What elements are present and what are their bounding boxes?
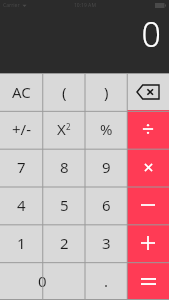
button[interactable]: % <box>85 110 127 148</box>
staticText: 0 <box>38 271 47 291</box>
button[interactable]: 0 <box>0 262 85 300</box>
staticText: ( <box>62 82 67 102</box>
button[interactable]: Divide <box>127 110 169 148</box>
button[interactable]: X <box>43 110 85 148</box>
button[interactable]: 6 <box>85 186 127 224</box>
staticText: 4 <box>17 195 26 215</box>
button[interactable]: 1 <box>0 224 43 262</box>
button[interactable]: Plus <box>127 224 169 262</box>
button[interactable]: . <box>85 262 127 300</box>
staticText: . <box>104 271 109 291</box>
button[interactable]: 8 <box>43 148 85 186</box>
button[interactable]: ( <box>43 73 85 110</box>
staticText: 5 <box>60 195 69 215</box>
button[interactable]: 3 <box>85 224 127 262</box>
button[interactable]: ) <box>85 73 127 110</box>
staticText: AC <box>12 82 31 102</box>
button[interactable]: AC <box>0 73 43 110</box>
button[interactable]: 5 <box>43 186 85 224</box>
staticText: 3 <box>102 233 111 253</box>
staticText: 6 <box>102 195 111 215</box>
button[interactable]: Minus <box>127 186 169 224</box>
staticText: 0 <box>141 11 161 57</box>
button[interactable]: Backspace <box>127 73 169 110</box>
staticText: ) <box>104 82 109 102</box>
button[interactable]: Multiply <box>127 148 169 186</box>
button[interactable]: Equals <box>127 262 169 300</box>
staticText: 1 <box>17 233 26 253</box>
button[interactable]: +/- <box>0 110 43 148</box>
button[interactable]: 2 <box>43 224 85 262</box>
button[interactable]: 9 <box>85 148 127 186</box>
staticText: % <box>100 119 113 139</box>
staticText: +/- <box>12 119 31 139</box>
staticText: 10:19 AM <box>74 2 96 9</box>
button[interactable]: 7 <box>0 148 43 186</box>
button[interactable]: 4 <box>0 186 43 224</box>
staticText: 9 <box>102 157 111 177</box>
staticText: Carrier <box>3 2 20 9</box>
staticText: 2 <box>60 233 69 253</box>
staticText: 7 <box>17 157 26 177</box>
staticText: X <box>57 119 66 139</box>
staticText: 2 <box>66 121 71 132</box>
staticText: 8 <box>60 157 69 177</box>
